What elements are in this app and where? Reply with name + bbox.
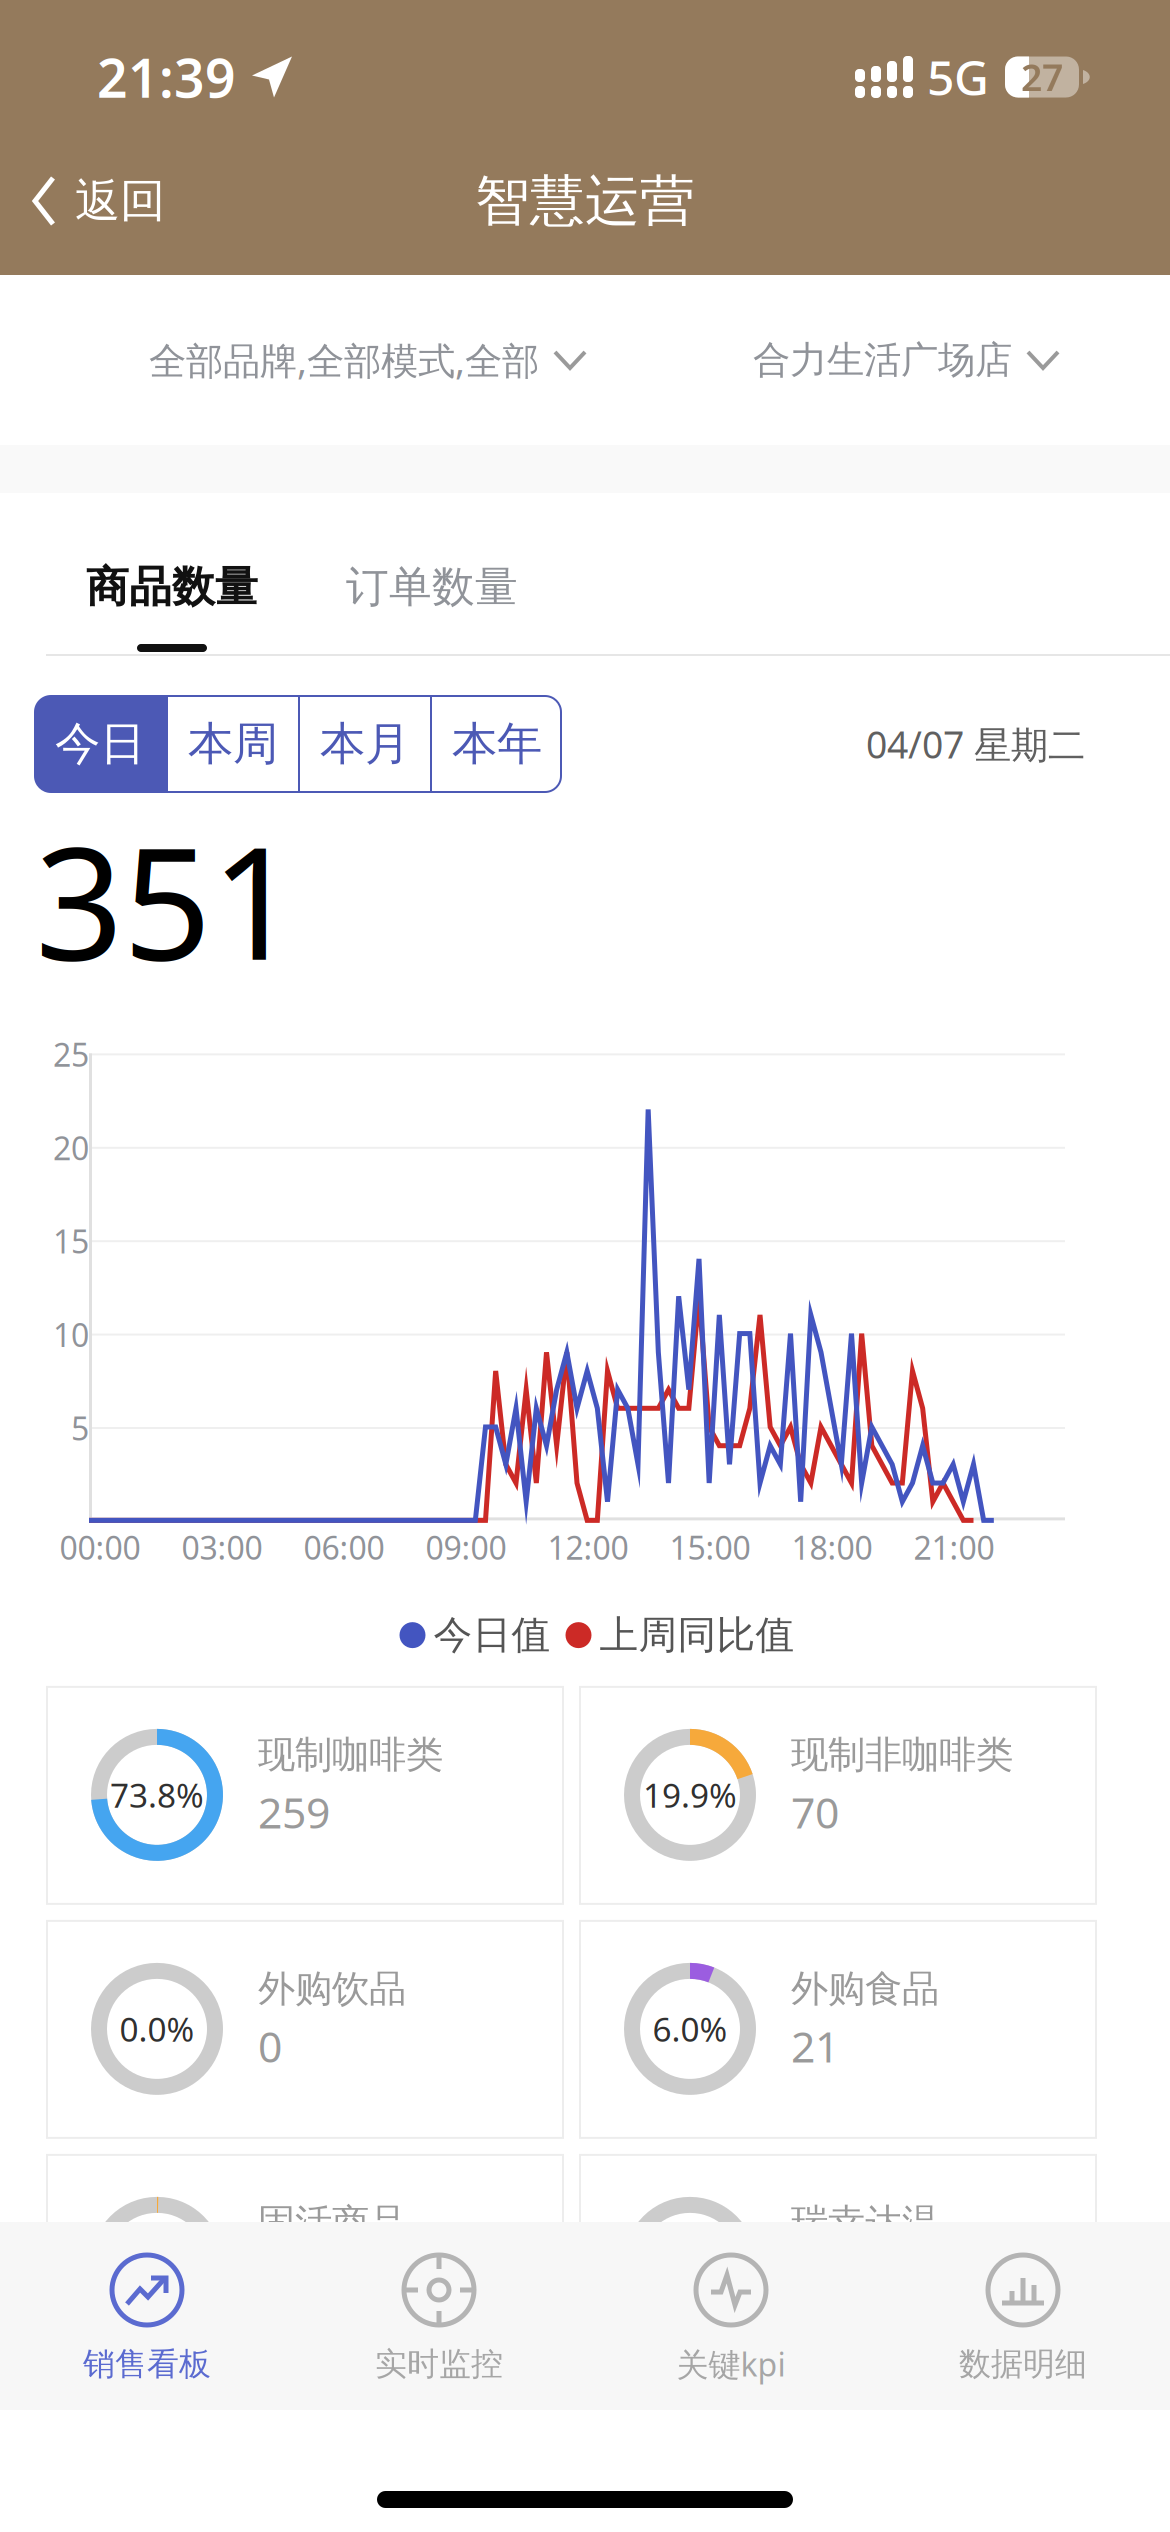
staticText: 0.3% (119, 2241, 194, 2285)
staticText: 固活商品 (258, 2200, 406, 2246)
staticText: 00:00 (59, 1526, 140, 1569)
button[interactable]: 73.8% (47, 1687, 563, 1904)
staticText: 04/07 星期二 (866, 719, 1085, 769)
staticText: 20 (53, 1126, 89, 1169)
staticText: 09:00 (425, 1526, 506, 1569)
button[interactable]: 实时监控 (293, 2222, 585, 2410)
button[interactable]: 本周 (168, 696, 298, 792)
staticText: 商品数量 (86, 561, 258, 613)
button[interactable]: 0.0% (47, 1921, 563, 2138)
staticText: 351 (35, 797, 299, 1002)
staticText: 06:00 (303, 1526, 384, 1569)
staticText: 15 (53, 1220, 89, 1262)
staticText: 15:00 (669, 1526, 750, 1569)
staticText: 27 (1021, 52, 1063, 102)
staticText: 销售看板 (83, 2344, 211, 2384)
button[interactable]: 商品数量 (84, 557, 260, 652)
staticText: 0 (258, 2018, 282, 2074)
staticText: 03:00 (181, 1526, 262, 1569)
button[interactable]: 数据明细 (877, 2222, 1169, 2410)
button[interactable]: 0.3% (47, 2155, 563, 2372)
staticText: 259 (258, 1784, 330, 1840)
staticText: 智慧运营 (475, 167, 695, 234)
button[interactable]: 6.0% (580, 1921, 1096, 2138)
staticText: 订单数量 (346, 561, 518, 613)
staticText: 0.0% (652, 2241, 727, 2285)
staticText: 今日 (55, 716, 145, 772)
button[interactable]: 返回 (0, 154, 189, 248)
button[interactable]: 销售看板 (1, 2222, 293, 2410)
staticText: 21 (791, 2018, 839, 2074)
staticText: 10 (53, 1313, 89, 1356)
staticText: 外购食品 (791, 1966, 939, 2012)
button[interactable]: 今日 (34, 696, 166, 792)
staticText: 18:00 (791, 1526, 872, 1569)
staticText: 70 (791, 1784, 839, 1840)
button[interactable]: 19.9% (580, 1687, 1096, 1904)
staticText: 本月 (320, 716, 410, 772)
staticText: 73.8% (110, 1773, 204, 1817)
staticText: 19.9% (643, 1773, 737, 1817)
button[interactable]: 合力生活广场店 (741, 275, 1072, 445)
button[interactable]: 全部品牌,全部模式,全部 (137, 275, 599, 445)
staticText: 本周 (188, 716, 278, 772)
staticText: 全部品牌,全部模式,全部 (149, 335, 539, 385)
staticText: 6.0% (652, 2007, 727, 2051)
button[interactable]: 订单数量 (344, 557, 520, 617)
staticText: 21:39 (97, 42, 236, 112)
button[interactable]: 本月 (300, 696, 430, 792)
staticText: 现制非咖啡类 (791, 1732, 1013, 1778)
staticText: 关键kpi (676, 2343, 785, 2385)
staticText: 瑞幸达温 (791, 2200, 939, 2246)
staticText: 实时监控 (375, 2344, 503, 2384)
staticText: 外购饮品 (258, 1966, 406, 2012)
staticText: 5 (71, 1407, 89, 1449)
staticText: 5G (927, 45, 989, 109)
staticText: 数据明细 (959, 2344, 1087, 2384)
staticText: 0.0% (119, 2007, 194, 2051)
button[interactable]: 本年 (432, 696, 562, 792)
staticText: 25 (53, 1033, 89, 1076)
staticText: 21:00 (913, 1526, 994, 1569)
staticText: 上周同比值 (599, 1611, 794, 1659)
staticText: 今日值 (433, 1611, 550, 1659)
button[interactable]: 0.0% (580, 2155, 1096, 2372)
staticText: 本年 (452, 716, 542, 772)
staticText: 合力生活广场店 (753, 337, 1012, 383)
staticText: 现制咖啡类 (258, 1732, 443, 1778)
button[interactable]: 关键kpi (585, 2222, 877, 2410)
staticText: 12:00 (547, 1526, 628, 1569)
staticText: 返回 (75, 173, 165, 229)
